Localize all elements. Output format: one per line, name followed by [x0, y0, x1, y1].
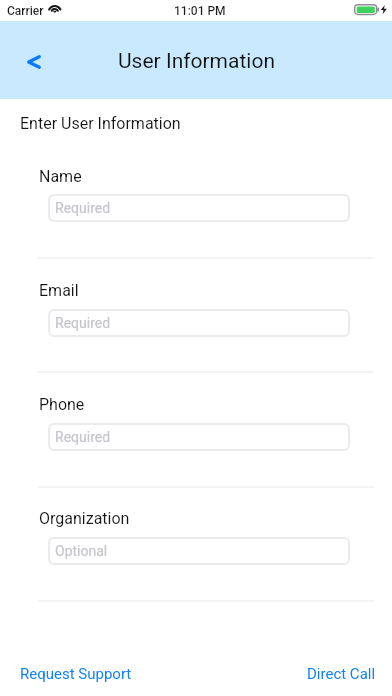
button[interactable]: Required	[48, 423, 350, 451]
button[interactable]: Direct Call	[299, 661, 384, 687]
button[interactable]: Optional	[48, 537, 350, 565]
button[interactable]: Required	[48, 194, 350, 222]
staticText: Phone	[39, 395, 85, 414]
staticText: 11:01 PM	[174, 4, 226, 18]
staticText: User Information	[118, 49, 276, 74]
staticText: Optional	[55, 543, 108, 559]
staticText: Carrier	[7, 4, 44, 18]
button[interactable]: Required	[48, 309, 350, 337]
staticText: Name	[39, 167, 82, 186]
staticText: Request Support	[20, 665, 132, 683]
staticText: Required	[55, 429, 111, 445]
staticText: Email	[39, 281, 79, 300]
staticText: Direct Call	[307, 665, 376, 683]
staticText: Required	[55, 200, 111, 216]
button[interactable]: Request Support	[12, 661, 140, 687]
staticText: Enter User Information	[20, 114, 181, 133]
staticText: Organization	[39, 509, 130, 528]
staticText: Required	[55, 315, 111, 331]
button[interactable]: Back	[15, 43, 52, 80]
